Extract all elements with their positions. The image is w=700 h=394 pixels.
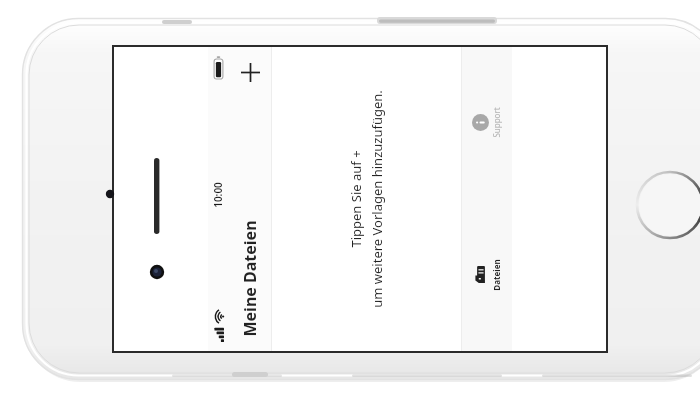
button[interactable]: Hinzufügen [230, 53, 270, 93]
staticText: Tippen Sie auf + [347, 150, 365, 248]
staticText: um weitere Vorlagen hinzuzufügen. [368, 90, 386, 308]
staticText: Meine Dateien [239, 220, 261, 337]
staticText: Dateien [491, 259, 502, 291]
staticText: 10:00 [211, 182, 225, 208]
button[interactable]: Dateien [462, 199, 512, 351]
button[interactable]: Support [462, 47, 512, 199]
staticText: Support [491, 107, 502, 138]
